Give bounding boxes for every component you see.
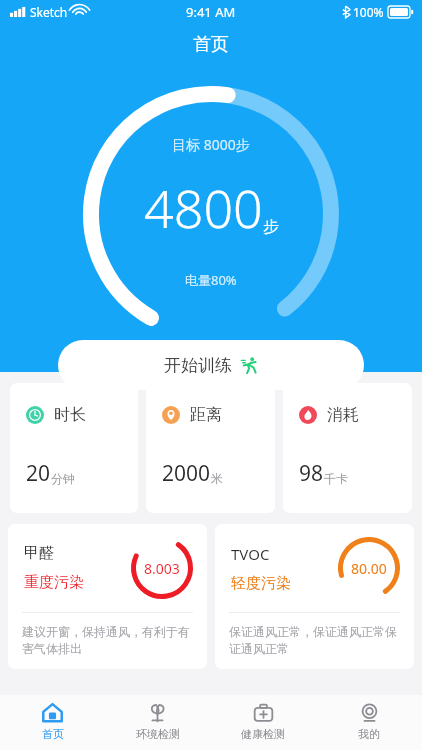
staticText: 环境检测 (136, 727, 180, 741)
staticText: 首页 (193, 33, 229, 56)
staticText: 健康检测 (241, 727, 285, 741)
staticText: TVOC (231, 544, 270, 564)
button[interactable]: 环境检测 (105, 695, 210, 750)
button[interactable]: 首页 (0, 695, 105, 750)
button[interactable]: 我的 (316, 695, 422, 750)
button[interactable]: 开始训练 (58, 340, 364, 390)
staticText: 保证通风正常，保证通风正常保证通风正常 (229, 624, 400, 656)
staticText: 目标 8000步 (172, 135, 250, 154)
button[interactable]: 消耗 (283, 383, 412, 513)
staticText: 8.003 (144, 559, 180, 578)
staticText: 重度污染 (24, 573, 84, 592)
staticText: 98 (299, 459, 324, 488)
staticText: 20 (26, 459, 51, 488)
staticText: 我的 (358, 727, 380, 741)
button[interactable]: TVOC (215, 524, 414, 669)
staticText: 轻度污染 (231, 574, 291, 593)
staticText: 米 (211, 471, 223, 486)
staticText: 80.00 (351, 559, 387, 578)
staticText: 步 (263, 217, 279, 237)
button[interactable]: 距离 (146, 383, 275, 513)
button[interactable]: 甲醛 (8, 524, 207, 669)
button[interactable]: 时长 (10, 383, 138, 513)
staticText: Sketch (30, 4, 68, 20)
staticText: 甲醛 (24, 544, 54, 563)
staticText: 2000 (162, 459, 211, 488)
staticText: 100% (353, 4, 384, 20)
staticText: 9:41 AM (186, 3, 236, 21)
staticText: 分钟 (51, 471, 75, 486)
staticText: 时长 (54, 405, 86, 425)
staticText: 建议开窗，保持通风，有利于有害气体排出 (22, 624, 193, 656)
staticText: 开始训练 (164, 355, 232, 376)
button[interactable]: 健康检测 (210, 695, 316, 750)
staticText: 距离 (190, 405, 222, 425)
staticText: 电量80% (185, 271, 237, 289)
staticText: 千卡 (324, 471, 348, 486)
staticText: 消耗 (327, 405, 359, 425)
staticText: 首页 (42, 727, 64, 741)
staticText: 4800 (144, 172, 263, 243)
